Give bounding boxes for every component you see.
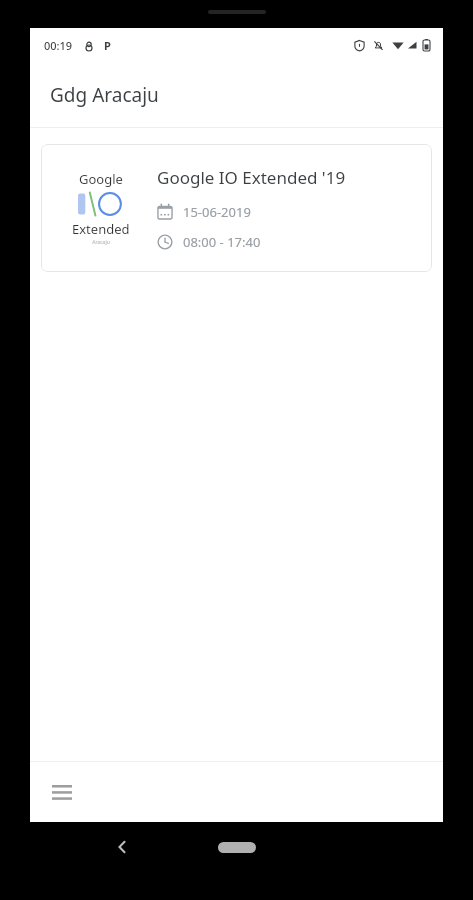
staticText: 15-06-2019 bbox=[183, 203, 251, 221]
staticText: Google bbox=[79, 170, 123, 188]
button[interactable]: Menu bbox=[38, 768, 86, 816]
staticText: Gdg Aracaju bbox=[50, 82, 159, 108]
button[interactable]: Home bbox=[207, 830, 267, 864]
staticText: 08:00 - 17:40 bbox=[183, 233, 261, 251]
staticText: Google IO Extended '19 bbox=[157, 166, 346, 189]
button[interactable]: Back bbox=[98, 823, 146, 871]
staticText: P bbox=[104, 38, 111, 53]
staticText: 00:19 bbox=[44, 38, 73, 53]
staticText: Aracaju bbox=[92, 239, 110, 246]
staticText: Extended bbox=[72, 220, 130, 238]
button[interactable]: Google bbox=[41, 144, 432, 272]
